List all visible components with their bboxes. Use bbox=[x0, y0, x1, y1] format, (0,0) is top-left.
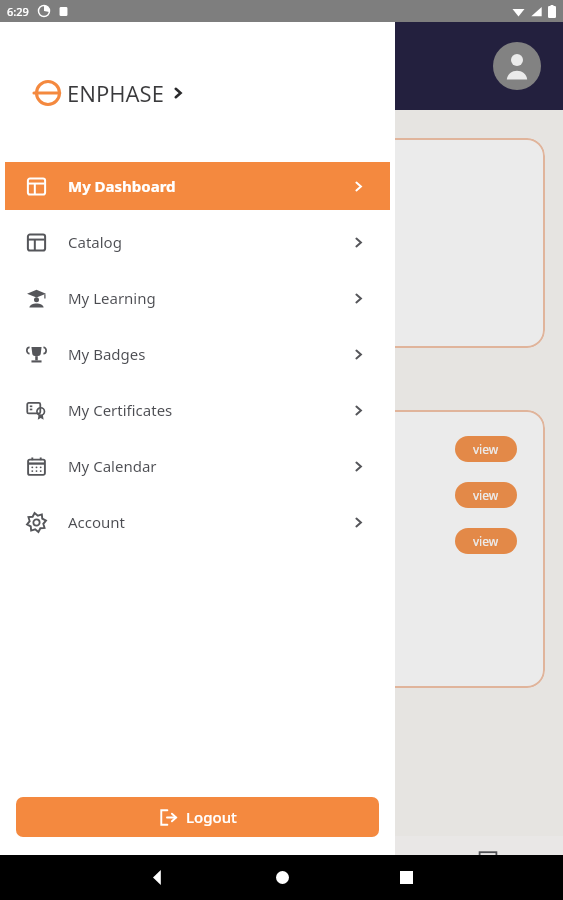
button[interactable]: Logout bbox=[16, 797, 379, 837]
button[interactable]: Account bbox=[5, 498, 390, 546]
button[interactable]: view bbox=[455, 482, 517, 508]
button[interactable]: My Dashboard bbox=[5, 162, 390, 210]
button[interactable]: My Learning bbox=[5, 274, 390, 322]
staticText: My Certificates bbox=[68, 400, 173, 420]
staticText: My Dashboard bbox=[68, 176, 176, 196]
button[interactable]: view bbox=[455, 436, 517, 462]
staticText: My Calendar bbox=[68, 456, 157, 476]
button[interactable]: My Learning bbox=[412, 836, 563, 900]
staticText: view bbox=[473, 487, 499, 503]
button[interactable]: My Certificates bbox=[5, 386, 390, 434]
button[interactable]: Catalog bbox=[5, 218, 390, 266]
other: Home bbox=[276, 871, 289, 884]
staticText: Logout bbox=[186, 807, 237, 827]
button[interactable]: My Badges bbox=[5, 330, 390, 378]
staticText: Account bbox=[68, 512, 126, 532]
staticText: My Learning bbox=[68, 288, 156, 308]
staticText: view bbox=[473, 441, 499, 457]
button[interactable]: view bbox=[455, 528, 517, 554]
button[interactable]: Profile bbox=[493, 42, 541, 90]
staticText: view bbox=[473, 533, 499, 549]
staticText: 6:29 bbox=[7, 4, 29, 19]
button[interactable]: Courses started bbox=[18, 138, 545, 348]
button[interactable]: My Calendar bbox=[5, 442, 390, 490]
staticText: ENPHASE bbox=[67, 78, 164, 108]
staticText: Catalog bbox=[68, 232, 122, 252]
button[interactable]: ENPHASE bbox=[34, 78, 186, 108]
staticText: Courses started bbox=[36, 224, 125, 240]
staticText: My Badges bbox=[68, 344, 146, 364]
staticText: Enrolled bbox=[36, 284, 83, 300]
other: Back bbox=[150, 870, 165, 885]
